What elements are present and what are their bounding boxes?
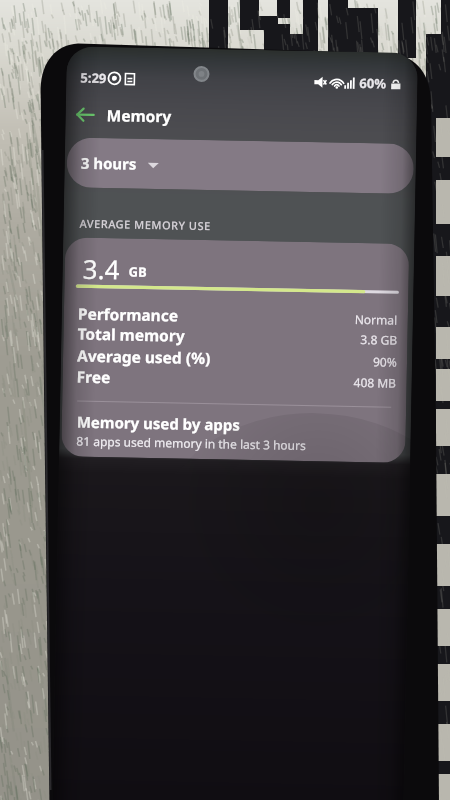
staticText: 3.4 [82,251,120,286]
button[interactable]: Memory used by apps [61,407,406,455]
staticText: 5:29 [80,69,106,87]
staticText: Memory [106,104,172,126]
staticText: Performance [78,303,179,325]
staticText: AVERAGE MEMORY USE [79,216,212,233]
staticText: 408 MB [353,374,397,391]
staticText: Normal [355,311,398,328]
staticText: 3.8 GB [360,331,398,348]
staticText: Average used (%) [77,345,211,368]
staticText: 60% [359,74,386,92]
staticText: 90% [373,353,397,370]
staticText: 3 hours [81,153,137,174]
staticText: 81 apps used memory in the last 3 hours [76,433,307,453]
button[interactable]: Back [71,101,98,128]
staticText: Memory used by apps [77,412,241,435]
staticText: Total memory [77,323,186,346]
staticText: Free [76,366,111,387]
button[interactable]: 3 hours [66,137,414,194]
staticText: GB [128,263,148,281]
